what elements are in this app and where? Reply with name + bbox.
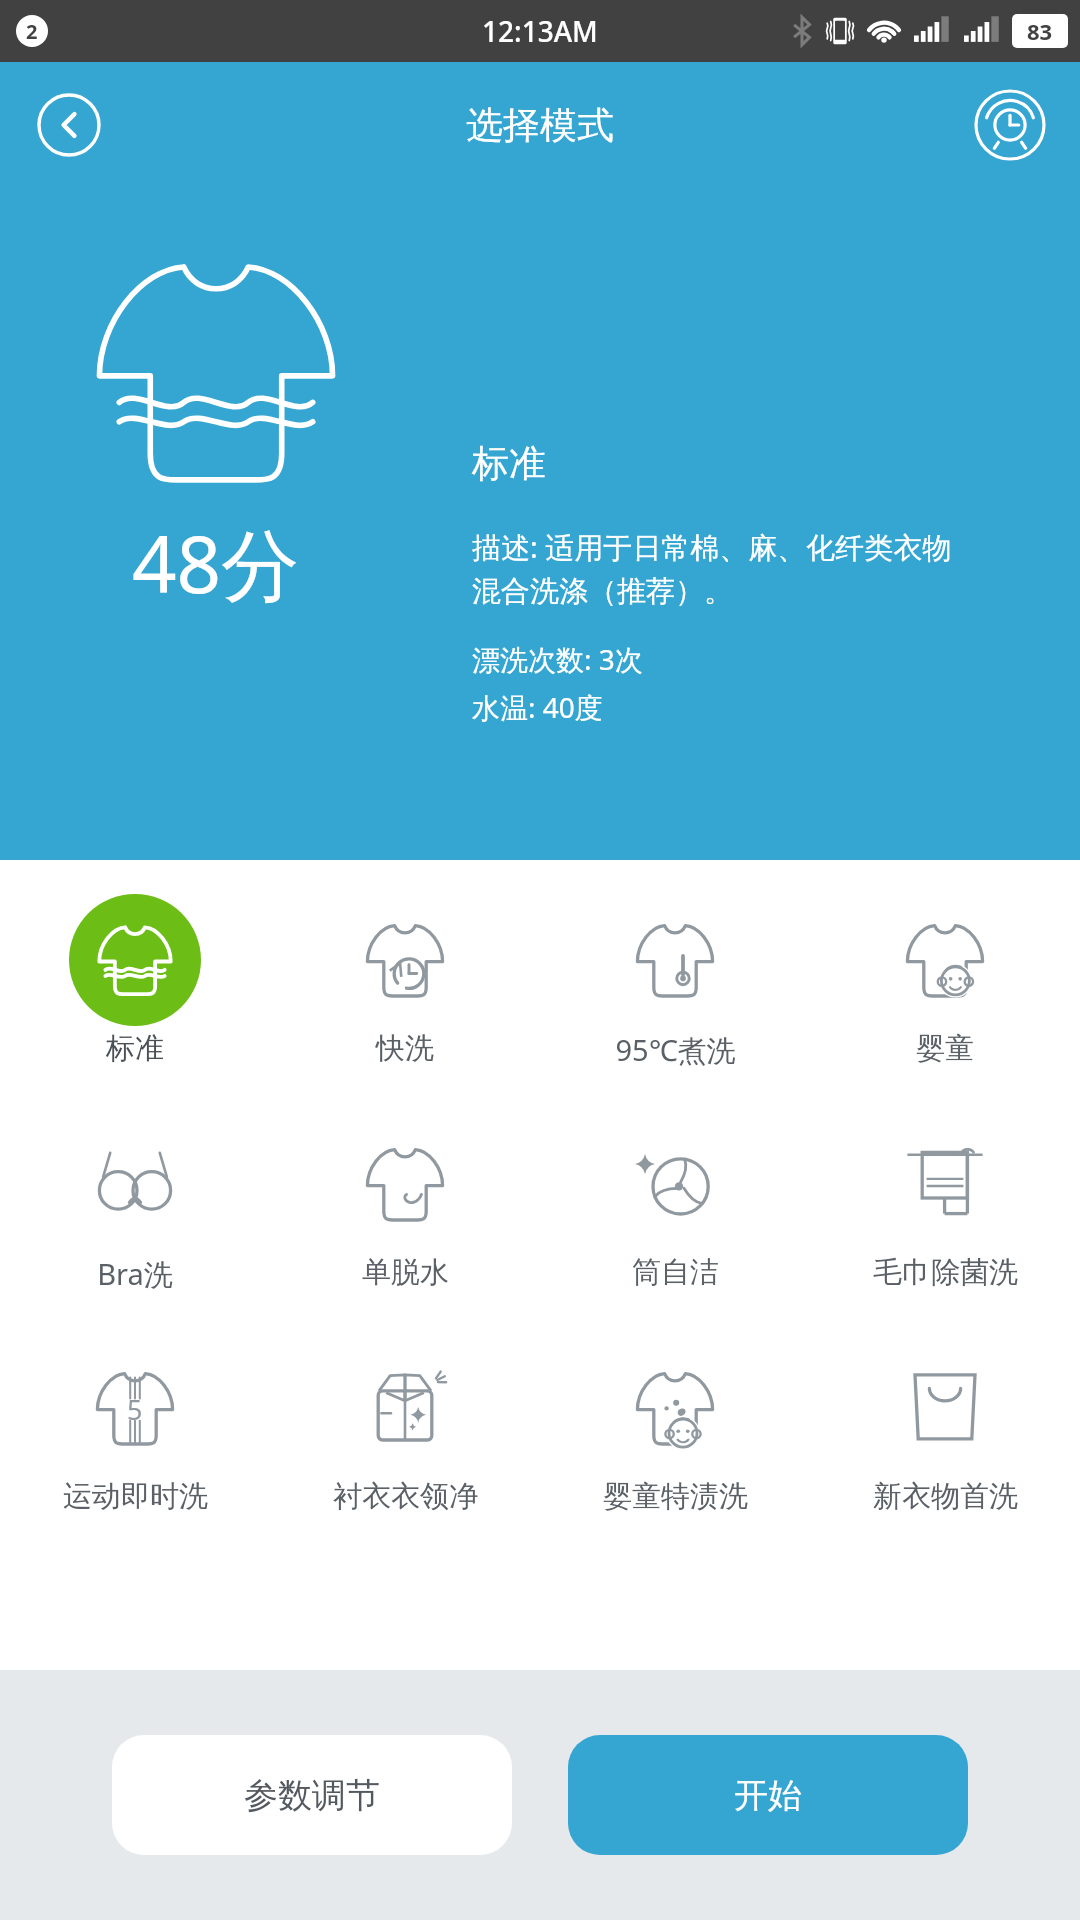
staticText: 毛巾除菌洗 (873, 1254, 1018, 1291)
staticText: 12:13AM (482, 12, 598, 50)
button[interactable]: Back (37, 93, 101, 157)
staticText: 单脱水 (362, 1254, 449, 1291)
staticText: 运动即时洗 (63, 1478, 208, 1515)
staticText: Bra洗 (97, 1254, 173, 1294)
button[interactable]: 5 (0, 1338, 270, 1519)
staticText: 参数调节 (244, 1774, 380, 1817)
staticText: 水温: 40度 (472, 688, 603, 726)
staticText: 5 (127, 1391, 143, 1428)
staticText: 83 (1027, 16, 1053, 46)
staticText: 筒自洁 (632, 1254, 719, 1291)
button[interactable]: 新衣物首洗 (810, 1338, 1080, 1519)
button[interactable]: 婴童 (810, 890, 1080, 1071)
button[interactable]: 衬衣衣领净 (270, 1338, 540, 1519)
staticText: 漂洗次数: 3次 (472, 640, 643, 678)
button[interactable]: 参数调节 (112, 1735, 512, 1855)
staticText: 标准 (106, 1030, 164, 1067)
button[interactable]: 筒自洁 (540, 1114, 810, 1295)
button[interactable]: 快洗 (270, 890, 540, 1071)
staticText: 开始 (734, 1774, 802, 1817)
button[interactable]: Bra洗 (0, 1114, 270, 1298)
button[interactable]: 单脱水 (270, 1114, 540, 1295)
button[interactable]: 标准 (0, 890, 270, 1071)
button[interactable]: Timer (974, 89, 1046, 161)
staticText: 婴童特渍洗 (603, 1478, 748, 1515)
button[interactable]: 开始 (568, 1735, 968, 1855)
staticText: 48分 (132, 510, 300, 617)
staticText: 95℃煮洗 (615, 1030, 736, 1070)
staticText: 衬衣衣领净 (333, 1478, 478, 1515)
staticText: 标准 (472, 440, 546, 487)
staticText: 新衣物首洗 (873, 1478, 1018, 1515)
staticText: 选择模式 (466, 102, 614, 149)
staticText: 婴童 (916, 1030, 974, 1067)
button[interactable]: 婴童特渍洗 (540, 1338, 810, 1519)
button[interactable]: 毛巾除菌洗 (810, 1114, 1080, 1295)
staticText: 描述: 适用于日常棉、麻、化纤类衣物 混合洗涤（推荐）。 (472, 527, 952, 610)
staticText: 2 (26, 18, 38, 45)
button[interactable]: 95℃煮洗 (540, 890, 810, 1074)
staticText: 快洗 (376, 1030, 434, 1067)
